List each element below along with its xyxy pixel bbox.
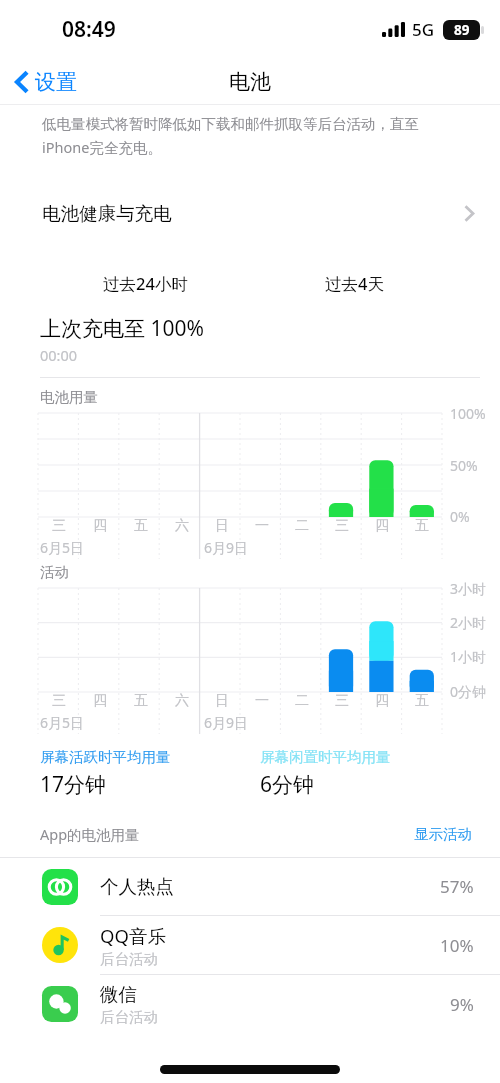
staticText: 3小时 [450,579,487,598]
button[interactable]: 电池健康与充电 [0,187,500,239]
staticText: 活动 [40,563,69,581]
staticText: 日 [215,692,229,710]
staticText: App的电池用量 [40,824,410,844]
staticText: 过去24小时 [103,272,188,295]
staticText: 六 [175,692,189,710]
staticText: 三 [52,692,66,710]
staticText: 电池健康与充电 [42,202,464,225]
other: 微信 [42,986,78,1022]
staticText: 四 [375,517,389,535]
button[interactable]: 个人热点 [0,858,500,915]
staticText: 6月9日 [204,538,249,557]
staticText: 三 [52,517,66,535]
staticText: 屏幕闲置时平均用量 [260,748,391,766]
staticText: 08:49 [62,15,116,44]
staticText: 后台活动 [100,950,158,968]
staticText: 二 [295,517,309,535]
staticText: 四 [93,517,107,535]
staticText: 微信 [100,983,137,1006]
staticText: 17分钟 [40,770,107,799]
staticText: 低电量模式将暂时降低如下载和邮件抓取等后台活动，直至 [42,115,419,133]
staticText: 显示活动 [414,825,472,843]
staticText: 五 [134,517,148,535]
staticText: 四 [375,692,389,710]
staticText: QQ音乐 [100,923,166,948]
staticText: 三 [335,692,349,710]
staticText: 五 [415,692,429,710]
staticText: 9% [450,993,474,1016]
staticText: 10% [440,934,474,957]
button[interactable]: 显示活动 [410,821,476,847]
staticText: 一 [255,692,269,710]
staticText: 电池 [229,69,271,95]
staticText: 过去4天 [325,272,384,295]
staticText: 1小时 [450,647,487,666]
button[interactable]: 过去4天 [250,265,459,302]
staticText: 100% [450,404,486,423]
staticText: 五 [134,692,148,710]
other: 个人热点 [42,869,78,905]
other: QQ音乐 [42,927,78,963]
staticText: 设置 [35,69,77,95]
staticText: 一 [255,517,269,535]
staticText: 50% [450,456,478,475]
staticText: 日 [215,517,229,535]
staticText: 5G [412,18,435,41]
staticText: 四 [93,692,107,710]
button[interactable]: QQ音乐 [0,916,500,974]
staticText: 五 [415,517,429,535]
staticText: iPhone完全充电。 [42,137,162,157]
staticText: 个人热点 [100,875,174,898]
staticText: 二 [295,692,309,710]
staticText: 三 [335,517,349,535]
button[interactable]: 设置 [10,63,83,101]
staticText: 屏幕活跃时平均用量 [40,748,171,766]
staticText: 0% [450,507,470,526]
staticText: 89 [454,21,470,39]
staticText: 2小时 [450,613,487,632]
staticText: 00:00 [40,345,78,365]
staticText: 上次充电至 100% [40,314,204,343]
staticText: 电池用量 [40,388,98,406]
staticText: 6月5日 [40,713,85,732]
button[interactable]: 微信 [0,975,500,1033]
staticText: 6分钟 [260,770,315,799]
staticText: 0分钟 [450,682,487,701]
staticText: 六 [175,517,189,535]
staticText: 6月9日 [204,713,249,732]
staticText: 后台活动 [100,1008,158,1026]
staticText: 57% [440,875,474,898]
button[interactable]: 过去24小时 [41,265,250,302]
staticText: 6月5日 [40,538,85,557]
